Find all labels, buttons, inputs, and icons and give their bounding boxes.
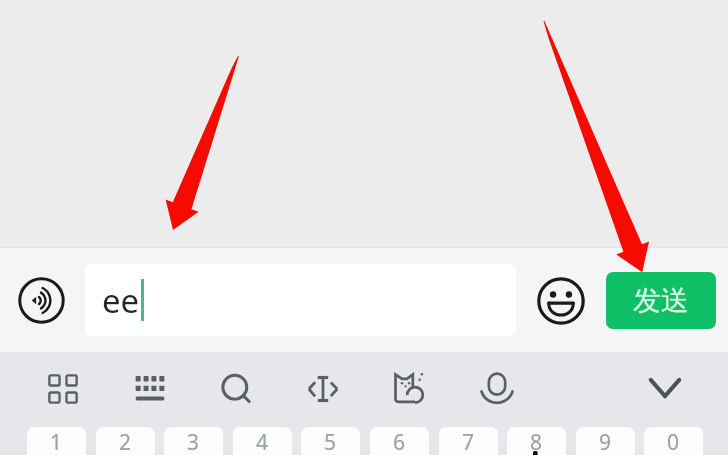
- staticText: 发送: [633, 283, 689, 318]
- staticText: 5: [324, 428, 337, 455]
- staticText: 2: [119, 428, 132, 455]
- staticText: 6: [393, 428, 406, 455]
- staticText: 8: [530, 428, 543, 455]
- button[interactable]: Hide keyboard: [638, 361, 692, 415]
- button[interactable]: Search: [208, 361, 262, 415]
- button[interactable]: 4: [233, 427, 292, 455]
- staticText: ee: [102, 278, 140, 323]
- button[interactable]: Apps: [36, 362, 90, 416]
- button[interactable]: 2: [96, 427, 155, 455]
- button[interactable]: 5: [301, 427, 360, 455]
- button[interactable]: 9: [576, 427, 635, 455]
- button[interactable]: 7: [439, 427, 498, 455]
- button[interactable]: Voice: [470, 360, 524, 414]
- button[interactable]: 3: [164, 427, 223, 455]
- button[interactable]: 发送: [606, 272, 716, 329]
- staticText: 1: [50, 428, 63, 455]
- button[interactable]: Cursor: [296, 362, 350, 416]
- button[interactable]: 8: [507, 427, 566, 455]
- staticText: 7: [462, 428, 475, 455]
- button[interactable]: Voice input: [14, 273, 68, 327]
- staticText: 0: [667, 428, 680, 455]
- staticText: 4: [256, 428, 269, 455]
- staticText: 3: [187, 428, 200, 455]
- button[interactable]: Emoji: [534, 274, 588, 328]
- button[interactable]: 0: [644, 427, 703, 455]
- staticText: 9: [599, 428, 612, 455]
- button[interactable]: ee: [85, 264, 516, 336]
- button[interactable]: 6: [370, 427, 429, 455]
- button[interactable]: Keyboard: [123, 361, 177, 415]
- button[interactable]: Stickers: [382, 361, 436, 415]
- button[interactable]: 1: [27, 427, 86, 455]
